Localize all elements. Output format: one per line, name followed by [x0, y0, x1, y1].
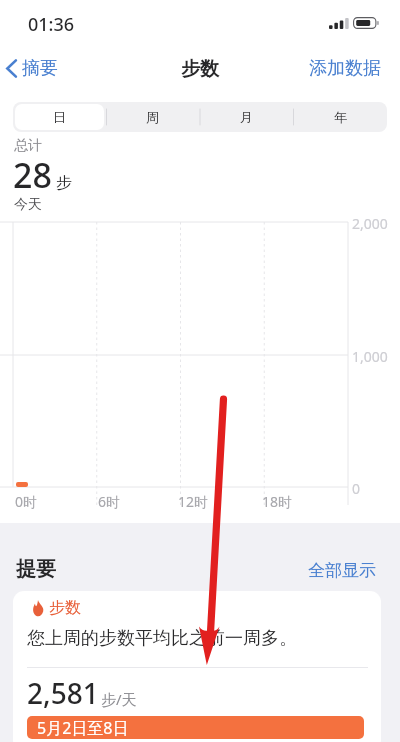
button[interactable]: 月: [201, 104, 291, 130]
staticText: 提要: [16, 557, 56, 582]
staticText: 步数: [181, 57, 219, 81]
button[interactable]: 步数: [13, 591, 381, 742]
staticText: 2,581: [27, 674, 99, 712]
button[interactable]: 摘要: [0, 51, 68, 86]
staticText: 18时: [262, 492, 293, 511]
staticText: 您上周的步数平均比之前一周多。: [27, 627, 297, 650]
other: Annotation arrow: [0, 0, 400, 742]
staticText: 月: [240, 109, 253, 125]
staticText: 2,000: [352, 214, 388, 233]
button[interactable]: 日: [15, 104, 104, 130]
staticText: 步数: [49, 598, 81, 618]
staticText: 6时: [98, 492, 121, 511]
staticText: 今天: [14, 196, 42, 214]
staticText: 总计: [14, 137, 42, 155]
staticText: 12时: [178, 492, 209, 511]
staticText: 步: [56, 173, 72, 193]
staticText: 5月2日至8日: [37, 717, 129, 739]
staticText: 1,000: [352, 347, 388, 366]
staticText: 周: [146, 109, 159, 125]
staticText: 28: [13, 152, 52, 198]
staticText: 全部显示: [308, 560, 376, 581]
staticText: 步/天: [101, 689, 137, 709]
staticText: 0时: [15, 492, 38, 511]
staticText: 摘要: [22, 57, 58, 80]
staticText: 0: [352, 479, 361, 498]
button[interactable]: 周: [108, 104, 197, 130]
button[interactable]: 全部显示: [300, 554, 384, 587]
button[interactable]: 年: [295, 104, 385, 130]
staticText: 年: [334, 109, 347, 125]
button[interactable]: 添加数据: [299, 49, 400, 88]
staticText: 01:36: [28, 12, 75, 37]
staticText: 日: [53, 109, 66, 125]
